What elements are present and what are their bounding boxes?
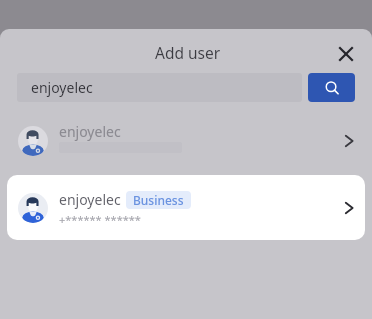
staticText: enjoyelec: [59, 122, 121, 141]
button[interactable]: enjoyelec: [7, 175, 365, 240]
staticText: enjoyelec: [31, 78, 93, 97]
button[interactable]: Search: [308, 73, 355, 102]
button[interactable]: enjoyelec: [17, 73, 302, 102]
staticText: Add user: [155, 42, 221, 63]
staticText: Business: [133, 192, 184, 208]
button[interactable]: enjoyelec: [0, 119, 372, 163]
staticText: enjoyelec: [59, 190, 121, 209]
staticText: +****** ******: [59, 212, 141, 227]
button[interactable]: Close: [330, 38, 362, 70]
